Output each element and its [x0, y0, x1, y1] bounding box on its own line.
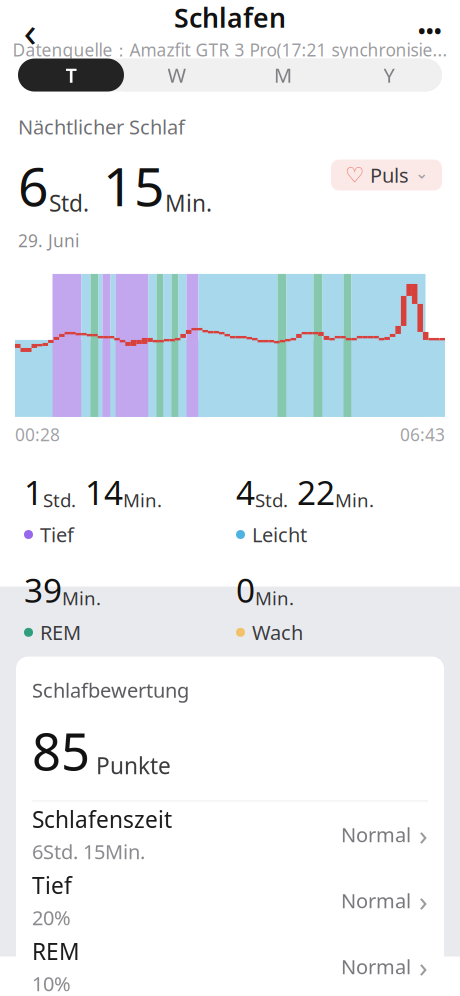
staticText: 14 — [76, 470, 123, 514]
staticText: 6Std. 15Min. — [32, 838, 145, 865]
staticText: Min. — [165, 188, 212, 218]
staticText: Schlafbewertung — [32, 677, 189, 703]
staticText: REM — [32, 936, 80, 966]
button[interactable]: Tief — [16, 867, 444, 933]
staticText: › — [419, 816, 428, 853]
staticText: Datenquelle：Amazfit GTR 3 Pro(17:21 sync… — [12, 38, 447, 61]
staticText: 85 — [32, 717, 90, 784]
staticText: Min. — [255, 585, 294, 610]
staticText: 00:28 — [15, 423, 60, 446]
button[interactable]: Back — [8, 8, 52, 52]
staticText: W — [167, 62, 186, 88]
button[interactable]: ♡ — [331, 159, 442, 190]
staticText: › — [419, 882, 428, 919]
staticText: 39 — [24, 568, 62, 612]
staticText: Std. — [255, 488, 288, 512]
staticText: Y — [383, 62, 394, 88]
staticText: ⌄ — [415, 164, 428, 182]
staticText: Punkte — [96, 750, 171, 780]
staticText: Schlafenszeit — [32, 804, 172, 834]
staticText: 6 — [18, 150, 49, 221]
staticText: Leicht — [252, 521, 307, 548]
staticText: 10% — [32, 970, 71, 996]
staticText: Std. — [43, 488, 76, 512]
staticText: 06:43 — [400, 423, 445, 446]
staticText: ♡ — [345, 163, 364, 187]
button[interactable]: W — [124, 58, 230, 91]
staticText: T — [65, 62, 76, 88]
button[interactable]: M — [230, 58, 336, 91]
staticText: Schlafen — [174, 0, 286, 35]
button[interactable]: REM — [16, 933, 444, 996]
staticText: Tief — [40, 521, 74, 548]
staticText: Min. — [123, 488, 162, 512]
staticText: Wach — [252, 619, 303, 646]
button[interactable]: Schlafenszeit — [16, 801, 444, 867]
staticText: M — [274, 62, 292, 88]
staticText: Std. — [49, 188, 89, 218]
button[interactable]: T — [18, 58, 124, 91]
staticText: Tief — [32, 870, 72, 900]
staticText: ••• — [418, 17, 442, 44]
staticText: 4 — [236, 470, 255, 514]
staticText: 0 — [236, 568, 255, 612]
button[interactable]: Y — [336, 58, 442, 91]
staticText: 22 — [288, 470, 335, 514]
staticText: 20% — [32, 904, 71, 931]
staticText: Min. — [62, 585, 101, 610]
staticText: ‹ — [23, 2, 36, 59]
staticText: Puls — [370, 162, 409, 188]
staticText: 15 — [89, 150, 165, 221]
staticText: Normal — [341, 953, 411, 980]
button[interactable]: More options — [408, 8, 452, 52]
staticText: Nächtlicher Schlaf — [18, 113, 185, 140]
staticText: 29. Juni — [18, 229, 79, 252]
staticText: REM — [40, 619, 81, 646]
staticText: 1 — [24, 470, 43, 514]
staticText: › — [419, 948, 428, 985]
staticText: Min. — [335, 488, 374, 512]
staticText: Normal — [341, 821, 411, 848]
staticText: Normal — [341, 887, 411, 914]
